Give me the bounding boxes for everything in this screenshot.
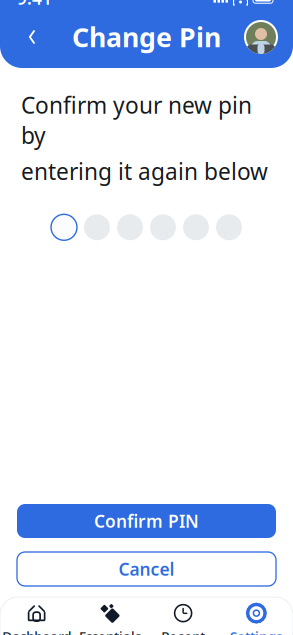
button[interactable]: Recent xyxy=(146,593,220,635)
button[interactable]: Back xyxy=(14,17,50,57)
staticText: Confirm your new pin by xyxy=(21,90,252,150)
button[interactable]: Cancel xyxy=(17,552,276,586)
button[interactable]: Settings xyxy=(220,593,293,635)
staticText: Change Pin xyxy=(72,19,221,55)
staticText: Cancel xyxy=(118,557,174,580)
button[interactable]: Profile xyxy=(243,17,279,57)
staticText: Confirm PIN xyxy=(94,509,199,532)
button[interactable]: Dashboard xyxy=(0,593,73,635)
staticText: Essentials xyxy=(79,627,141,635)
staticText: Settings xyxy=(230,627,283,635)
staticText: Recent xyxy=(161,627,205,635)
staticText: 9:41 xyxy=(17,0,52,9)
staticText: entering it again below xyxy=(21,156,268,186)
staticText: Dashboard xyxy=(2,627,71,635)
button[interactable]: Essentials xyxy=(73,593,146,635)
button[interactable]: Confirm PIN xyxy=(17,504,276,538)
